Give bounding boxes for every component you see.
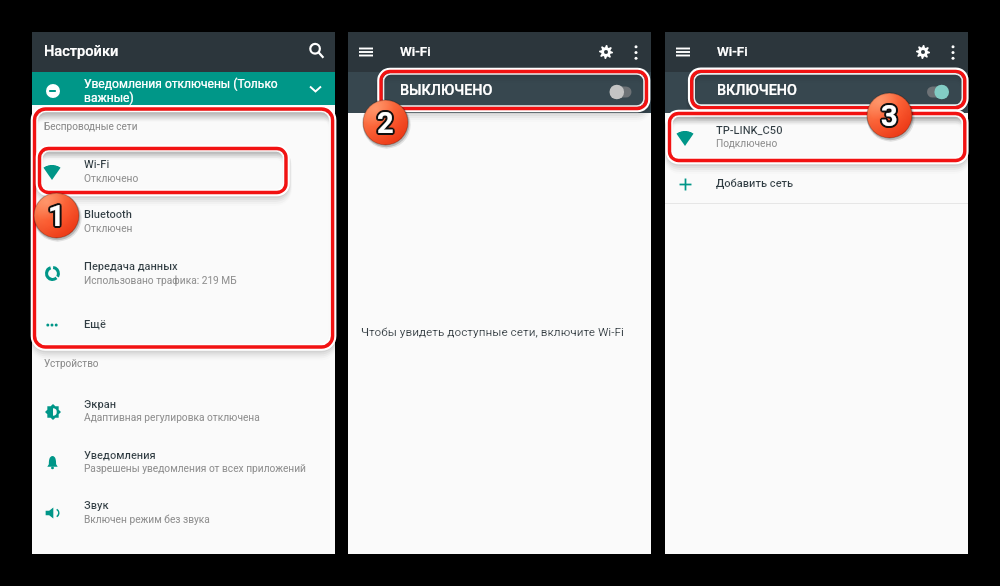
staticText: Разрешены уведомления от всех приложений	[84, 463, 306, 475]
button[interactable]	[32, 491, 335, 535]
button[interactable]: Turn Wi-Fi off	[665, 72, 968, 113]
staticText: 3	[880, 99, 897, 133]
staticText: 1	[50, 199, 67, 233]
button[interactable]	[32, 200, 335, 244]
staticText: 2	[376, 106, 393, 140]
staticText: Экран	[84, 398, 117, 411]
staticText: 2	[376, 108, 393, 142]
staticText: Беспроводные сети	[44, 121, 138, 133]
staticText: Использовано трафика: 219 МБ	[84, 275, 237, 287]
staticText: 1	[46, 200, 63, 234]
staticText: Отключено	[84, 173, 139, 185]
staticText: 1	[49, 201, 66, 235]
staticText: Подключено	[716, 138, 778, 150]
staticText: 2	[378, 106, 395, 140]
staticText: 1	[47, 200, 64, 234]
staticText: 3	[880, 100, 897, 134]
staticText: 1	[48, 197, 65, 231]
staticText: 2	[376, 104, 393, 138]
staticText: Чтобы увидеть доступные сети, включите W…	[361, 325, 624, 339]
staticText: 3	[880, 101, 897, 135]
staticText: 3	[881, 99, 898, 133]
staticText: Ещё	[84, 318, 106, 331]
staticText: Bluetooth	[84, 208, 132, 221]
button[interactable]	[32, 72, 335, 105]
staticText: 3	[881, 97, 898, 131]
staticText: 2	[378, 105, 395, 139]
staticText: 3	[882, 98, 899, 132]
staticText: Уведомления отключены (Только	[84, 77, 278, 91]
staticText: 2	[376, 107, 393, 141]
staticText: 3	[881, 100, 898, 134]
staticText: 3	[883, 98, 900, 132]
staticText: 1	[49, 199, 66, 233]
button[interactable]: Advanced settings	[592, 38, 620, 66]
button[interactable]: More options	[939, 38, 967, 66]
staticText: 2	[375, 107, 392, 141]
staticText: 3	[881, 101, 898, 135]
staticText: 1	[47, 201, 64, 235]
staticText: 2	[379, 106, 396, 140]
button[interactable]	[665, 115, 968, 159]
staticText: Wi-Fi	[717, 44, 748, 60]
button[interactable]	[32, 440, 335, 484]
staticText: 3	[882, 100, 899, 134]
staticText: 1	[50, 198, 67, 232]
staticText: 2	[377, 105, 394, 139]
button[interactable]: More options	[622, 38, 650, 66]
staticText: TP-LINK_C50	[716, 124, 783, 137]
staticText: 1	[48, 201, 65, 235]
staticText: 2	[377, 108, 394, 142]
button[interactable]	[32, 303, 335, 347]
button[interactable]	[32, 150, 335, 194]
staticText: 2	[375, 106, 392, 140]
staticText: ВЫКЛЮЧЕНО	[400, 82, 493, 99]
staticText: 1	[48, 199, 65, 233]
staticText: Передача данных	[84, 260, 178, 273]
staticText: 3	[880, 98, 897, 132]
button[interactable]	[32, 252, 335, 296]
staticText: 3	[883, 100, 900, 134]
staticText: 2	[377, 107, 394, 141]
button[interactable]: Advanced settings	[909, 38, 937, 66]
button[interactable]	[32, 389, 335, 433]
staticText: 3	[882, 97, 899, 131]
staticText: Отключен	[84, 223, 133, 235]
staticText: ВКЛЮЧЕНО	[717, 82, 797, 99]
staticText: 1	[49, 200, 66, 234]
staticText: 1	[47, 198, 64, 232]
staticText: Адаптивная регулировка отключена	[84, 412, 260, 424]
staticText: Уведомления	[84, 449, 156, 462]
staticText: 2	[375, 105, 392, 139]
staticText: 1	[46, 199, 63, 233]
staticText: 2	[379, 105, 396, 139]
staticText: 2	[377, 104, 394, 138]
button[interactable]: Search	[302, 36, 332, 66]
staticText: 1	[49, 197, 66, 231]
staticText: 2	[378, 107, 395, 141]
staticText: 3	[879, 99, 896, 133]
staticText: 2	[377, 106, 394, 140]
staticText: 1	[48, 198, 65, 232]
staticText: Настройки	[44, 42, 119, 59]
staticText: 3	[880, 97, 897, 131]
staticText: 3	[882, 101, 899, 135]
staticText: 2	[376, 105, 393, 139]
staticText: 1	[47, 197, 64, 231]
staticText: Устройство	[44, 358, 99, 370]
staticText: 3	[883, 99, 900, 133]
button[interactable]: Navigation menu	[352, 38, 380, 66]
staticText: 1	[47, 199, 64, 233]
button[interactable]: Turn Wi-Fi on	[348, 72, 651, 113]
staticText: Добавить сеть	[716, 177, 794, 190]
staticText: 3	[879, 98, 896, 132]
staticText: 2	[379, 107, 396, 141]
staticText: Включен режим без звука	[84, 514, 210, 526]
staticText: 3	[881, 98, 898, 132]
staticText: 3	[879, 100, 896, 134]
button[interactable]	[665, 165, 968, 203]
staticText: Wi-Fi	[84, 158, 110, 171]
staticText: Звук	[84, 499, 109, 512]
staticText: Wi-Fi	[400, 44, 431, 60]
button[interactable]: Navigation menu	[669, 38, 697, 66]
